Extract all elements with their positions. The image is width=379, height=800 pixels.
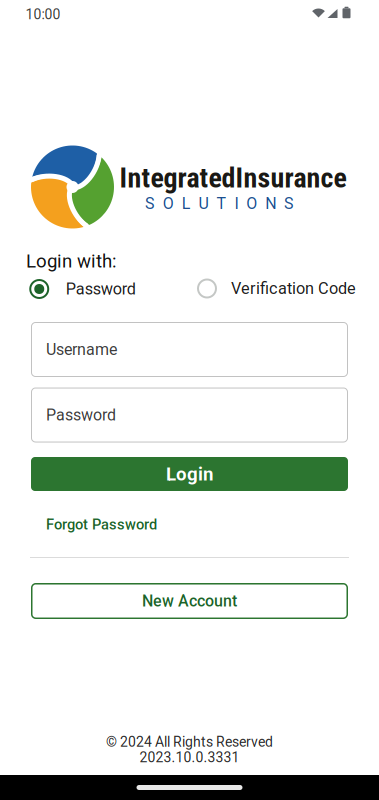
staticText: IntegratedInsurance <box>119 162 346 194</box>
button[interactable]: Forgot Password <box>46 516 157 533</box>
staticText: New Account <box>142 592 237 610</box>
button[interactable]: Login <box>31 457 348 491</box>
staticText: O <box>163 194 174 213</box>
button[interactable]: Verification Code <box>197 278 356 298</box>
staticText: Login <box>166 463 213 485</box>
staticText: Username <box>46 340 117 359</box>
staticText: I <box>234 194 238 213</box>
staticText: N <box>265 194 276 213</box>
staticText: Password <box>66 279 136 299</box>
staticText: Forgot Password <box>46 516 157 533</box>
staticText: 10:00 <box>25 6 60 23</box>
staticText: L <box>182 194 191 213</box>
staticText: S <box>145 194 155 213</box>
staticText: Password <box>46 406 116 424</box>
staticText: Login with: <box>26 250 117 272</box>
staticText: O <box>246 194 257 213</box>
staticText: © 2024 All Rights Reserved <box>106 734 273 750</box>
button[interactable]: Password <box>31 387 348 442</box>
staticText: T <box>216 194 226 213</box>
button[interactable]: Username <box>31 322 348 377</box>
staticText: 2023.10.0.3331 <box>139 749 239 766</box>
button[interactable]: Password <box>29 279 136 299</box>
button[interactable]: New Account <box>31 583 348 619</box>
staticText: U <box>199 194 209 213</box>
staticText: Verification Code <box>231 279 356 298</box>
staticText: S <box>284 194 294 213</box>
